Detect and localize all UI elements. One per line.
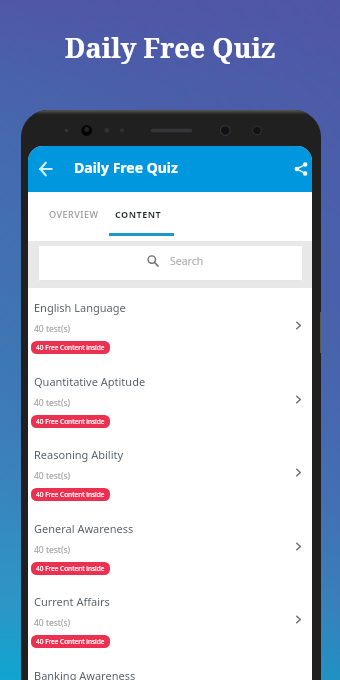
staticText: 40 test(s) [34, 470, 71, 482]
button[interactable]: Search [38, 245, 303, 281]
button[interactable]: Back [30, 146, 61, 192]
staticText: General Awareness [34, 521, 134, 536]
staticText: 40 test(s) [34, 544, 71, 556]
button[interactable]: Quantitative Aptitude [28, 362, 312, 436]
staticText: 40 Free Content inside [36, 564, 105, 573]
button[interactable]: Reasoning Ability [28, 435, 312, 509]
button[interactable]: General Awareness [28, 509, 312, 583]
staticText: Banking Awareness [34, 668, 136, 680]
staticText: 40 test(s) [34, 617, 71, 629]
button[interactable]: Banking Awareness [28, 656, 312, 680]
staticText: 40 Free Content inside [36, 417, 105, 426]
button[interactable]: Share [285, 146, 312, 192]
staticText: 40 Free Content inside [36, 490, 105, 499]
staticText: Current Affairs [34, 594, 110, 609]
staticText: Search [170, 254, 204, 268]
staticText: English Language [34, 300, 126, 315]
staticText: Quantitative Aptitude [34, 374, 146, 389]
staticText: 40 test(s) [34, 323, 71, 335]
button[interactable]: English Language [28, 288, 312, 362]
staticText: 40 Free Content inside [36, 637, 105, 646]
staticText: Reasoning Ability [34, 447, 124, 462]
staticText: Daily Free Quiz [74, 158, 178, 177]
button[interactable]: Current Affairs [28, 582, 312, 656]
button[interactable]: OVERVIEW [49, 189, 99, 238]
staticText: CONTENT [115, 208, 162, 220]
staticText: Daily Free Quiz [0, 29, 340, 66]
button[interactable]: CONTENT [115, 189, 162, 238]
staticText: OVERVIEW [49, 208, 99, 220]
staticText: 40 Free Content inside [36, 343, 105, 352]
staticText: 40 test(s) [34, 397, 71, 409]
